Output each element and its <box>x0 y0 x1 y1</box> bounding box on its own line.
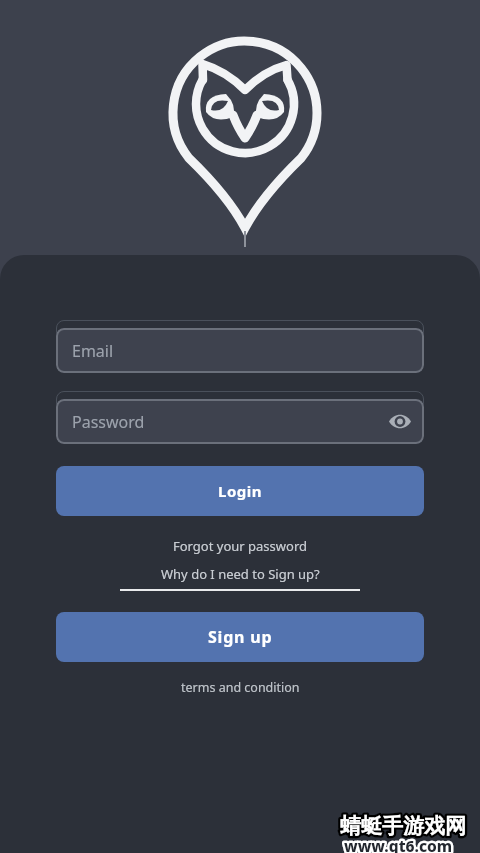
staticText: Sign up <box>208 626 273 648</box>
staticText: Login <box>218 481 262 501</box>
button[interactable]: Email <box>56 328 424 373</box>
staticText: Email <box>72 340 114 362</box>
staticText: Forgot your password <box>173 537 307 555</box>
staticText: 蜻蜓手游戏网 <box>340 813 466 839</box>
button[interactable]: Login <box>56 466 424 516</box>
button[interactable]: Sign up <box>56 612 424 662</box>
button[interactable]: Forgot your password <box>0 536 480 556</box>
staticText: www.qt6.com <box>344 835 453 853</box>
staticText: terms and condition <box>181 679 300 696</box>
button[interactable]: Why do I need to Sign up? <box>0 564 480 584</box>
button[interactable]: Password <box>56 399 424 444</box>
staticText: 蜻蜓手游戏网 <box>340 813 466 839</box>
staticText: Password <box>72 411 145 433</box>
staticText: Why do I need to Sign up? <box>161 565 320 583</box>
button[interactable]: terms and condition <box>0 677 480 697</box>
staticText: www.qt6.com <box>344 835 453 853</box>
